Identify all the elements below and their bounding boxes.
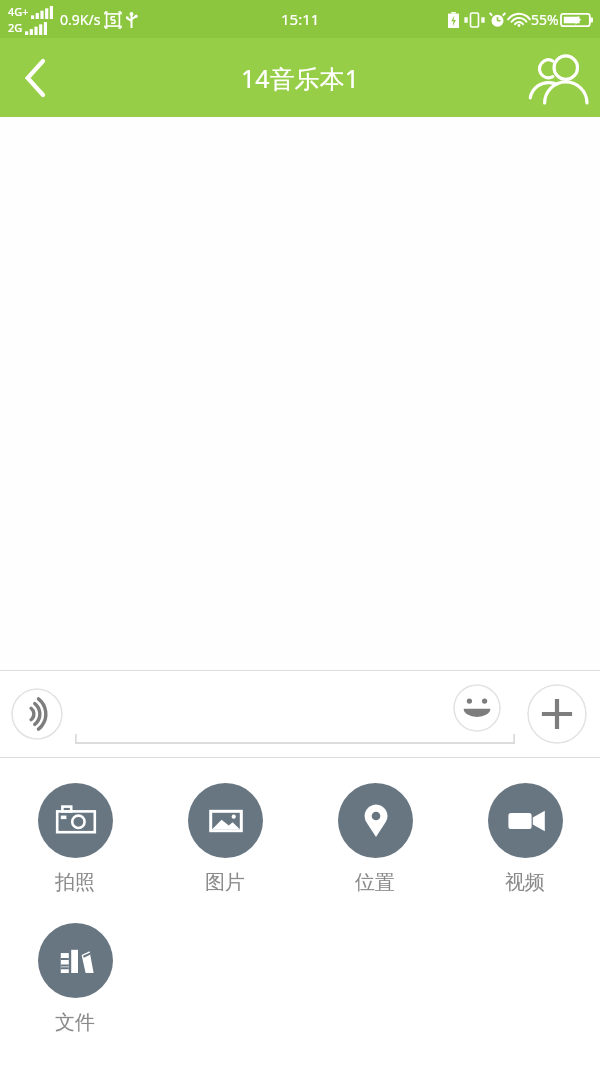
button[interactable]: 拍照 — [0, 783, 150, 895]
button[interactable] — [75, 683, 515, 745]
staticText: 2G — [8, 20, 23, 35]
button[interactable]: Emoji — [453, 684, 501, 732]
button[interactable]: Voice message — [11, 688, 63, 740]
staticText: 0.9K/s — [60, 10, 101, 29]
button[interactable]: 位置 — [300, 783, 450, 895]
button[interactable]: Back — [0, 38, 72, 117]
button[interactable]: More options — [527, 684, 587, 744]
staticText: 55% — [531, 10, 559, 29]
staticText: 图片 — [205, 870, 245, 895]
button[interactable]: Members — [520, 38, 600, 117]
staticText: 视频 — [505, 870, 545, 895]
staticText: 拍照 — [55, 870, 95, 895]
staticText: 14音乐本1 — [241, 61, 359, 95]
staticText: 15:11 — [281, 9, 320, 29]
staticText: 位置 — [355, 870, 395, 895]
staticText: 文件 — [55, 1010, 95, 1035]
button[interactable]: 图片 — [150, 783, 300, 895]
staticText: 4G+ — [8, 4, 29, 19]
button[interactable]: 视频 — [450, 783, 600, 895]
button[interactable]: 文件 — [0, 923, 150, 1035]
